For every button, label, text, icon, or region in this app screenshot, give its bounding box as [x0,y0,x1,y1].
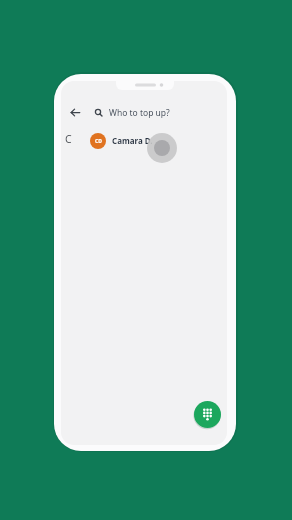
button[interactable]: CD [87,130,215,151]
button[interactable] [67,104,84,121]
staticText: CD [95,138,102,145]
staticText: Camara D. [112,135,153,146]
staticText: C [65,132,72,146]
button[interactable]: Who to top up? [109,105,209,120]
staticText: Who to top up? [109,107,170,119]
button[interactable] [194,401,221,428]
